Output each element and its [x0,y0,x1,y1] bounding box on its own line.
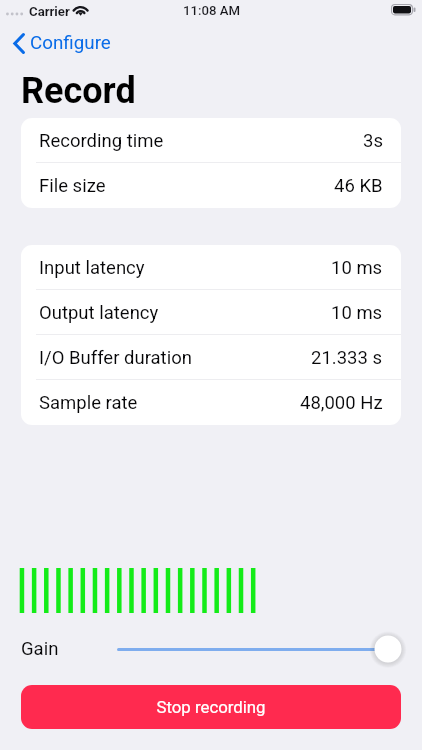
button[interactable]: Sample rate [21,380,401,425]
staticText: Input latency [39,257,145,279]
staticText: Gain [21,638,59,660]
staticText: 10 ms [331,302,383,324]
staticText: 48,000 Hz [300,392,383,414]
staticText: I/O Buffer duration [39,347,192,369]
staticText: 11:08 AM [183,3,241,18]
button[interactable]: I/O Buffer duration [21,335,401,380]
staticText: 3s [363,130,383,152]
staticText: Sample rate [39,392,138,414]
staticText: Configure [30,32,111,54]
other: Back [13,33,25,54]
button[interactable]: Output latency [21,290,401,335]
button[interactable]: Back [0,30,111,56]
button[interactable]: Recording time [21,118,401,163]
button[interactable]: File size [21,163,401,208]
staticText: Record [21,70,136,112]
staticText: Stop recording [156,697,266,717]
staticText: 21.333 s [311,347,383,369]
staticText: Carrier [29,4,70,19]
staticText: Output latency [39,302,159,324]
staticText: Recording time [39,130,164,152]
staticText: 46 KB [334,175,383,197]
button[interactable]: Gain level [117,634,401,664]
button[interactable]: Stop recording [21,685,401,729]
staticText: File size [39,175,106,197]
staticText: 10 ms [331,257,383,279]
button[interactable]: Input latency [21,245,401,290]
